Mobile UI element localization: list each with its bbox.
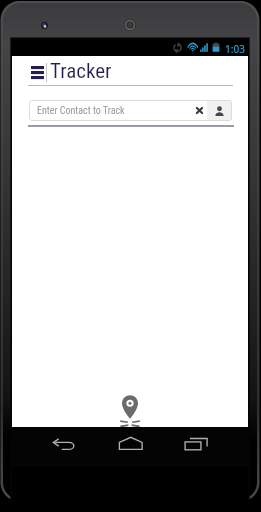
button[interactable]: Home (108, 427, 150, 467)
staticText: Enter Contact to Track (37, 105, 125, 117)
staticText: Tracker (50, 59, 112, 84)
staticText: 1:03 (225, 42, 245, 56)
button[interactable]: Tracker (50, 58, 112, 84)
button[interactable]: Back (41, 427, 83, 467)
button[interactable]: Recents (175, 427, 217, 467)
button[interactable]: Pick contact (207, 100, 232, 121)
button[interactable]: Menu (26, 61, 48, 84)
button[interactable]: Enter Contact to Track (29, 100, 191, 121)
button[interactable]: Clear (191, 100, 207, 121)
